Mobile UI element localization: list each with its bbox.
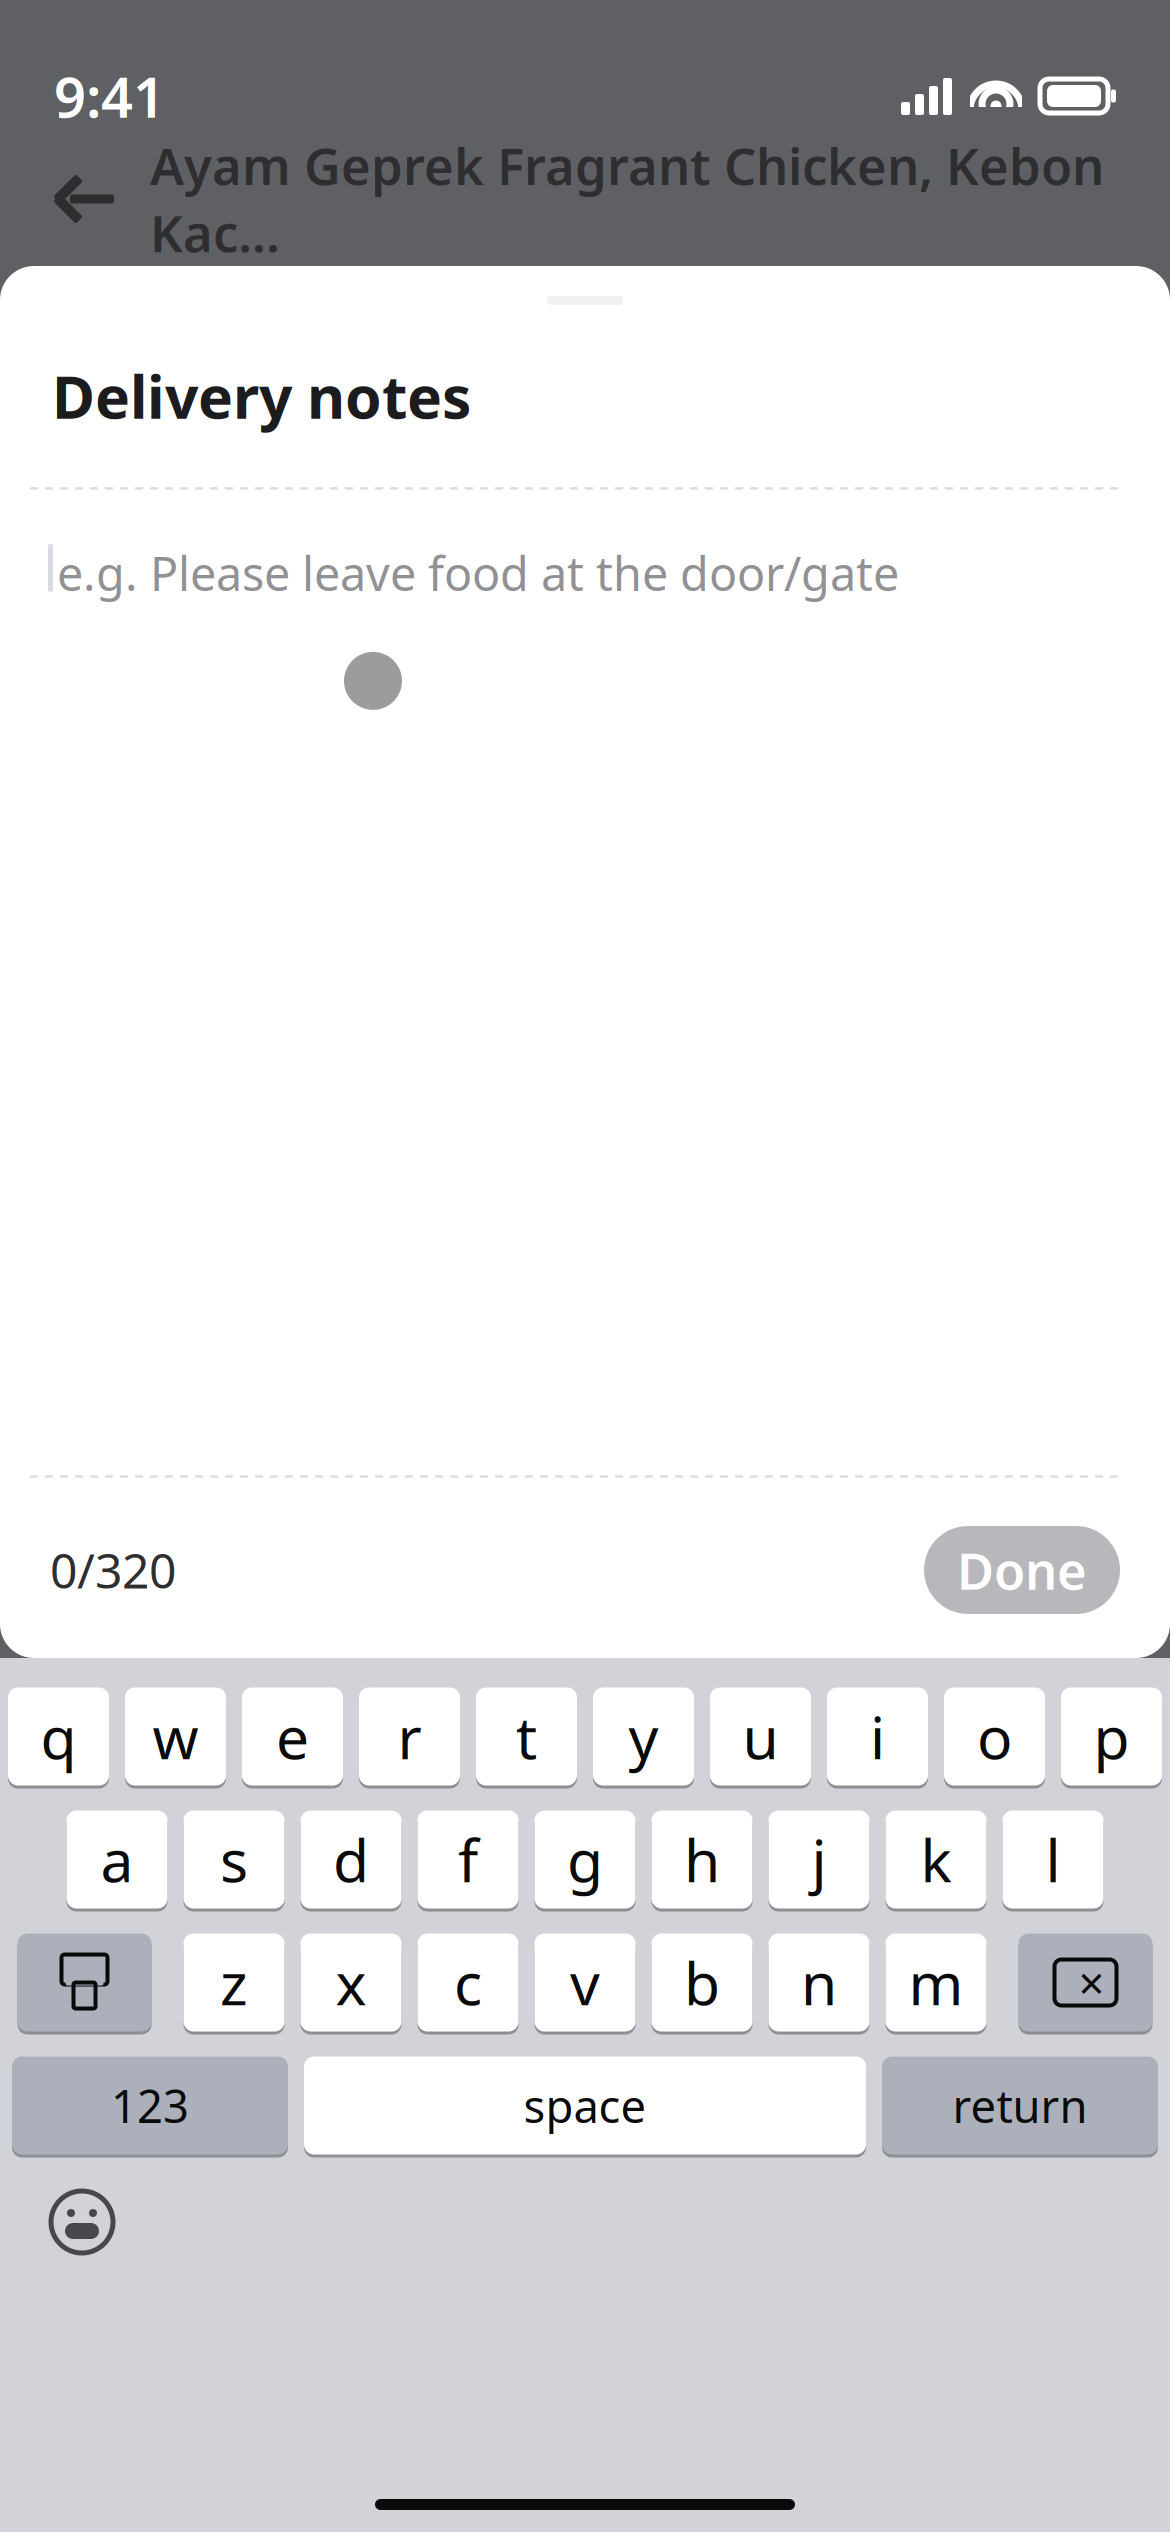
button[interactable]: t <box>476 1686 577 1787</box>
staticText: w <box>152 1697 198 1775</box>
staticText: i <box>870 1697 885 1775</box>
staticText: l <box>1045 1820 1060 1898</box>
staticText: d <box>333 1820 369 1898</box>
button[interactable]: c <box>417 1932 518 2033</box>
staticText: e <box>276 1697 309 1775</box>
staticText: x <box>335 1943 366 2021</box>
button[interactable]: 123 <box>12 2055 288 2156</box>
button[interactable]: Done <box>924 1526 1120 1614</box>
staticText: t <box>516 1697 537 1775</box>
staticText: j <box>811 1820 826 1898</box>
staticText: g <box>567 1820 603 1898</box>
staticText: f <box>458 1820 478 1898</box>
staticText: 0/320 <box>50 1538 176 1602</box>
staticText: r <box>397 1697 421 1775</box>
button[interactable]: i <box>827 1686 928 1787</box>
staticText: c <box>454 1943 482 2021</box>
button[interactable]: e <box>242 1686 343 1787</box>
staticText: q <box>40 1697 76 1775</box>
staticText: z <box>220 1943 248 2021</box>
button[interactable]: a <box>66 1809 167 1910</box>
staticText: 123 <box>111 2075 189 2136</box>
staticText: k <box>920 1820 951 1898</box>
button[interactable]: j <box>768 1809 869 1910</box>
button[interactable]: m <box>885 1932 986 2033</box>
staticText: e.g. Please leave food at the door/gate <box>57 542 899 604</box>
button[interactable]: Emoji keyboard <box>34 2174 130 2270</box>
button[interactable]: u <box>710 1686 811 1787</box>
staticText: h <box>684 1820 720 1898</box>
staticText: × <box>1078 1952 1104 2013</box>
button[interactable]: x <box>300 1932 401 2033</box>
button[interactable]: r <box>359 1686 460 1787</box>
staticText: n <box>801 1943 837 2021</box>
button[interactable]: h <box>651 1809 752 1910</box>
staticText: u <box>742 1697 778 1775</box>
button[interactable]: o <box>944 1686 1045 1787</box>
button[interactable]: return <box>882 2055 1158 2156</box>
button[interactable]: Back <box>44 159 136 239</box>
staticText: o <box>977 1697 1012 1775</box>
staticText: a <box>100 1820 133 1898</box>
staticText: Delivery notes <box>52 357 471 435</box>
staticText: b <box>684 1943 720 2021</box>
button[interactable]: f <box>417 1809 518 1910</box>
button[interactable]: Delete <box>1018 1932 1152 2033</box>
button[interactable]: w <box>125 1686 226 1787</box>
button[interactable]: s <box>183 1809 284 1910</box>
staticText: Ayam Geprek Fragrant Chicken, Kebon Kac.… <box>150 132 1104 266</box>
staticText: Done <box>957 1536 1087 1604</box>
button[interactable]: k <box>885 1809 986 1910</box>
staticText: return <box>952 2075 1087 2136</box>
button[interactable]: l <box>1002 1809 1103 1910</box>
staticText: v <box>570 1943 600 2021</box>
button[interactable]: q <box>8 1686 109 1787</box>
staticText: y <box>628 1697 658 1775</box>
staticText: space <box>523 2075 646 2136</box>
button[interactable]: g <box>534 1809 635 1910</box>
button[interactable]: b <box>651 1932 752 2033</box>
staticText: 9:41 <box>54 59 165 133</box>
staticText: s <box>220 1820 248 1898</box>
button[interactable]: y <box>593 1686 694 1787</box>
button[interactable]: d <box>300 1809 401 1910</box>
button[interactable]: z <box>183 1932 284 2033</box>
button[interactable]: space <box>304 2055 866 2156</box>
staticText: p <box>1093 1697 1129 1775</box>
button[interactable]: n <box>768 1932 869 2033</box>
button[interactable]: p <box>1061 1686 1162 1787</box>
staticText: m <box>908 1943 963 2021</box>
button[interactable]: v <box>534 1932 635 2033</box>
button[interactable]: Shift <box>17 1932 151 2033</box>
